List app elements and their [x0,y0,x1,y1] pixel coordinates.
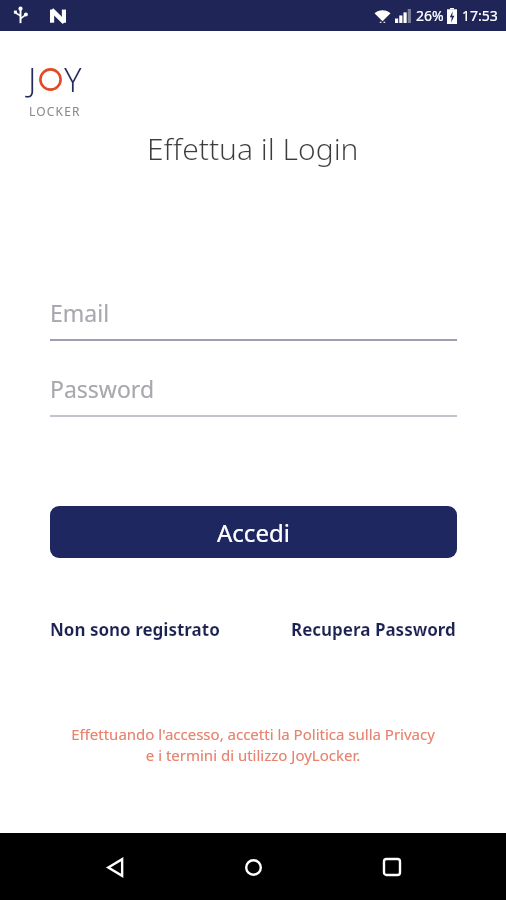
staticText: Email [50,297,110,328]
staticText: Effettuando l'accesso, accetti la Politi… [71,724,435,766]
staticText: Accedi [217,516,290,549]
staticText: Non sono registrato [50,618,220,641]
button[interactable]: Home [229,843,277,891]
button[interactable]: Accedi [50,506,457,558]
staticText: 26% [416,6,444,25]
staticText: Recupera Password [291,618,456,641]
staticText: Effettua il Login [147,128,359,169]
button[interactable]: Effettuando l'accesso, accetti la Politi… [18,724,488,766]
staticText: Password [50,373,155,404]
button[interactable]: Recent apps [368,843,416,891]
staticText: LOCKER [29,103,81,119]
button[interactable]: Recupera Password [291,618,456,641]
button[interactable]: Password [50,373,457,417]
button[interactable]: Back [91,843,139,891]
button[interactable]: Non sono registrato [50,618,220,641]
staticText: J [28,57,37,102]
staticText: Y [64,57,82,102]
button[interactable]: Email [50,297,457,341]
staticText: 17:53 [462,6,498,25]
